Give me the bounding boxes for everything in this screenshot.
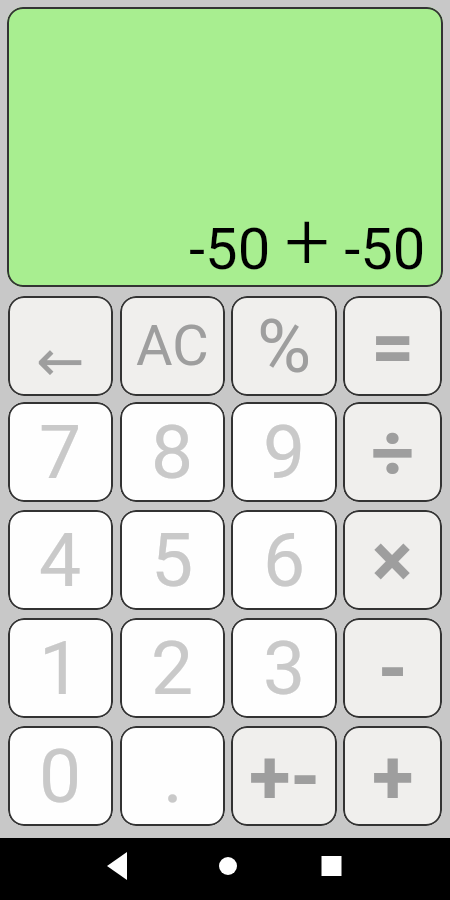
staticText: - [378,624,408,713]
staticText: ← [36,327,85,395]
staticText: = [371,302,415,391]
staticText: ÷ [371,408,415,497]
button[interactable] [300,838,450,900]
button[interactable] [0,838,150,900]
staticText: 9 [263,408,306,496]
button[interactable]: 7 [8,402,113,502]
button[interactable]: . [120,726,225,826]
staticText: 7 [39,408,82,496]
staticText: 4 [39,516,82,604]
button[interactable]: 4 [8,510,113,610]
button[interactable]: = [343,296,442,396]
staticText: AC [136,313,209,379]
button[interactable]: 1 [8,618,113,718]
staticText: 2 [151,624,194,712]
button[interactable]: × [343,510,442,610]
button[interactable]: % [231,296,337,396]
staticText: -50 + -50 [189,195,426,287]
button[interactable]: ÷ [343,402,442,502]
staticText: +- [249,732,320,821]
staticText: 3 [263,624,306,712]
staticText: 5 [151,516,194,604]
button[interactable]: -50 + -50 [7,7,443,287]
button[interactable]: +- [231,726,337,826]
button[interactable]: 9 [231,402,337,502]
staticText: 6 [263,516,306,604]
staticText: × [372,516,413,605]
button[interactable]: 3 [231,618,337,718]
staticText: 0 [39,732,82,820]
button[interactable]: ← [8,296,113,396]
button[interactable]: 0 [8,726,113,826]
staticText: 1 [39,624,82,712]
button[interactable]: AC [120,296,225,396]
button[interactable]: - [343,618,442,718]
button[interactable]: 5 [120,510,225,610]
button[interactable]: 2 [120,618,225,718]
staticText: % [257,303,312,390]
button[interactable]: + [343,726,442,826]
staticText: 8 [151,408,194,496]
button[interactable] [150,838,300,900]
staticText: + [372,732,414,821]
staticText: . [163,732,183,820]
button[interactable]: 8 [120,402,225,502]
button[interactable]: 6 [231,510,337,610]
